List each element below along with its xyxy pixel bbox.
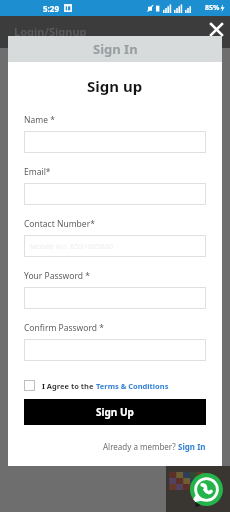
staticText: Sign In xyxy=(178,441,206,452)
button[interactable] xyxy=(24,183,206,205)
staticText: Your Password * xyxy=(24,270,90,282)
button[interactable]: I Agree to the xyxy=(24,380,206,391)
staticText: I Agree to the xyxy=(42,381,96,391)
staticText: Confirm Password * xyxy=(24,322,104,334)
button[interactable]: Sign Up xyxy=(24,399,206,425)
staticText: Mobile No. 8591065800 xyxy=(30,241,114,251)
staticText: 85% xyxy=(205,3,220,13)
staticText: Name * xyxy=(24,114,55,126)
button[interactable]: Sign In xyxy=(178,441,206,452)
staticText: Login/Signup xyxy=(14,24,87,39)
button[interactable] xyxy=(24,131,206,153)
button[interactable]: Chat on WhatsApp xyxy=(190,473,223,506)
button[interactable]: Sign In xyxy=(8,36,222,62)
button[interactable] xyxy=(24,339,206,361)
staticText: Already a member? xyxy=(103,441,178,452)
staticText: Sign Up xyxy=(96,405,134,419)
staticText: Sign In xyxy=(93,40,138,58)
button[interactable]: Mobile No. 8591065800 xyxy=(24,235,206,257)
staticText: Contact Number* xyxy=(24,218,95,230)
button[interactable]: Close xyxy=(205,18,227,40)
staticText: Sign up xyxy=(87,76,143,96)
staticText: Email* xyxy=(24,166,51,178)
button[interactable] xyxy=(24,287,206,309)
staticText: Terms & Conditions xyxy=(96,381,169,391)
staticText: 5:29 xyxy=(43,3,59,14)
